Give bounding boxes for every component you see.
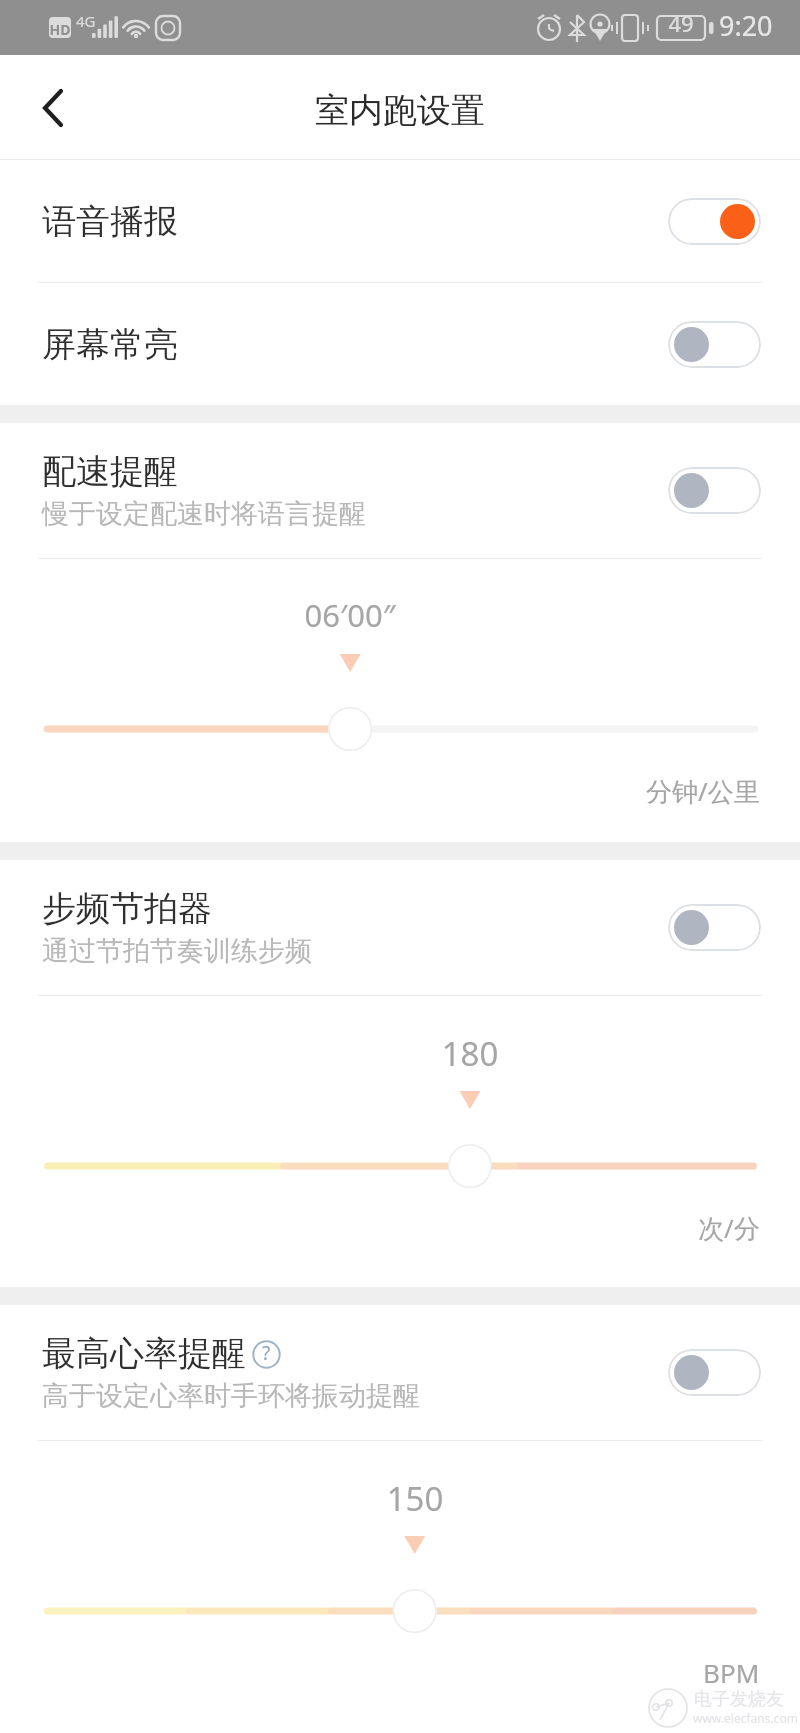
staticText: 高于设定心率时手环将振动提醒 <box>42 1379 420 1413</box>
staticText: 语音播报 <box>42 200 178 243</box>
staticText: 06′00″ <box>290 594 410 636</box>
button[interactable]: Off <box>668 904 761 951</box>
button[interactable]: 最高心率提醒 <box>0 1305 800 1440</box>
staticText: HD <box>47 20 73 39</box>
button[interactable]: 屏幕常亮 <box>0 283 800 405</box>
staticText: 4G <box>76 11 96 31</box>
staticText: 180 <box>410 1031 530 1076</box>
staticText: 配速提醒 <box>42 450 178 493</box>
button[interactable]: Back <box>10 58 94 158</box>
staticText: 最高心率提醒 <box>42 1332 246 1375</box>
staticText: ? <box>262 1340 271 1366</box>
staticText: 电子发烧友 <box>694 1688 784 1711</box>
staticText: 屏幕常亮 <box>42 323 178 366</box>
button[interactable]: Off <box>668 467 761 514</box>
staticText: 分钟/公里 <box>646 773 760 809</box>
staticText: 150 <box>355 1476 475 1521</box>
button[interactable]: Off <box>668 321 761 368</box>
button[interactable]: 配速提醒 <box>0 423 800 558</box>
button[interactable]: 语音播报 <box>0 160 800 282</box>
button[interactable]: 步频节拍器 <box>0 860 800 995</box>
staticText: 室内跑设置 <box>315 89 485 132</box>
staticText: 9:20 <box>719 7 773 44</box>
staticText: BPM <box>703 1655 760 1690</box>
staticText: 通过节拍节奏训练步频 <box>42 934 312 968</box>
button[interactable]: Help <box>251 1339 281 1369</box>
staticText: 步频节拍器 <box>42 887 212 930</box>
staticText: 次/分 <box>698 1210 760 1246</box>
staticText: 慢于设定配速时将语言提醒 <box>42 497 366 531</box>
button[interactable]: Off <box>668 1349 761 1396</box>
button[interactable]: On <box>668 198 761 245</box>
staticText: 49 <box>664 8 698 38</box>
staticText: www.elecfans.com <box>693 1710 798 1726</box>
